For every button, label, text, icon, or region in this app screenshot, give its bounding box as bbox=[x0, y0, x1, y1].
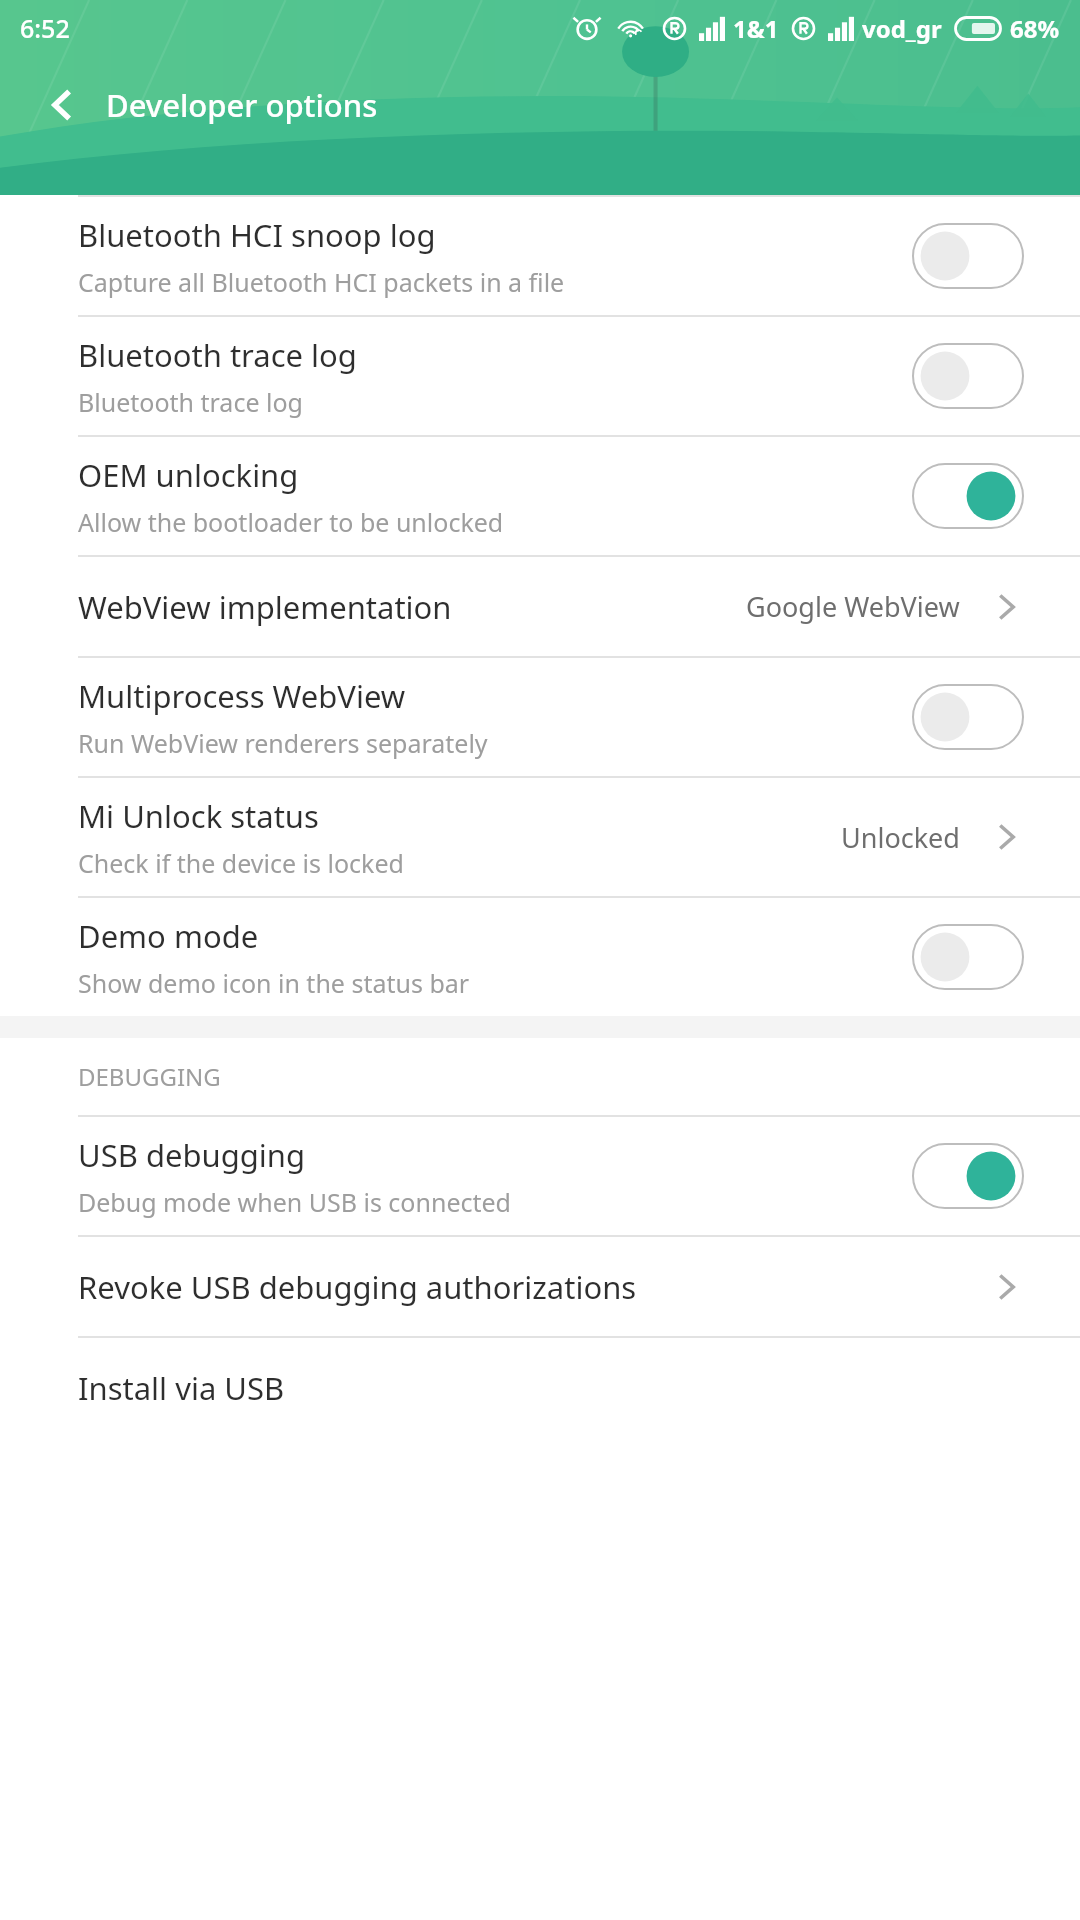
button[interactable]: Toggle off bbox=[912, 924, 1024, 990]
staticText: Run WebView renderers separately bbox=[78, 726, 488, 760]
button[interactable]: Toggle on bbox=[912, 463, 1024, 529]
staticText: Multiprocess WebView bbox=[78, 675, 406, 717]
button[interactable]: Bluetooth HCI snoop log bbox=[0, 197, 1080, 315]
staticText: Revoke USB debugging authorizations bbox=[78, 1266, 637, 1308]
button[interactable]: WebView implementation bbox=[0, 557, 1080, 656]
staticText: vod_gr bbox=[862, 12, 942, 45]
staticText: 1&1 bbox=[733, 12, 779, 45]
staticText: Unlocked bbox=[841, 819, 960, 856]
button[interactable]: Toggle off bbox=[912, 343, 1024, 409]
staticText: Show demo icon in the status bar bbox=[78, 966, 470, 1000]
staticText: 68% bbox=[1010, 12, 1060, 45]
staticText: USB debugging bbox=[78, 1134, 306, 1176]
staticText: Debug mode when USB is connected bbox=[78, 1185, 511, 1219]
staticText: 6:52 bbox=[20, 11, 70, 45]
staticText: WebView implementation bbox=[78, 586, 452, 628]
staticText: Allow the bootloader to be unlocked bbox=[78, 505, 504, 539]
staticText: Demo mode bbox=[78, 915, 259, 957]
staticText: DEBUGGING bbox=[78, 1060, 221, 1093]
button[interactable]: Revoke USB debugging authorizations bbox=[0, 1237, 1080, 1336]
staticText: Mi Unlock status bbox=[78, 795, 319, 837]
button[interactable]: Install via USB bbox=[0, 1338, 1080, 1437]
staticText: Google WebView bbox=[746, 588, 960, 625]
staticText: Capture all Bluetooth HCI packets in a f… bbox=[78, 265, 565, 299]
staticText: Bluetooth trace log bbox=[78, 334, 357, 376]
button[interactable]: OEM unlocking bbox=[0, 437, 1080, 555]
staticText: OEM unlocking bbox=[78, 454, 299, 496]
staticText: Check if the device is locked bbox=[78, 846, 404, 880]
staticText: Bluetooth HCI snoop log bbox=[78, 214, 436, 256]
button[interactable]: USB debugging bbox=[0, 1117, 1080, 1235]
staticText: Bluetooth trace log bbox=[78, 385, 303, 419]
button[interactable]: Multiprocess WebView bbox=[0, 658, 1080, 776]
button[interactable]: Demo mode bbox=[0, 898, 1080, 1016]
button[interactable]: Mi Unlock status bbox=[0, 778, 1080, 896]
staticText: Install via USB bbox=[78, 1367, 285, 1409]
staticText: Developer options bbox=[106, 84, 378, 126]
button[interactable]: Toggle off bbox=[912, 223, 1024, 289]
button[interactable]: Bluetooth trace log bbox=[0, 317, 1080, 435]
button[interactable]: Toggle off bbox=[912, 684, 1024, 750]
button[interactable]: Back bbox=[30, 72, 96, 138]
button[interactable]: Toggle on bbox=[912, 1143, 1024, 1209]
